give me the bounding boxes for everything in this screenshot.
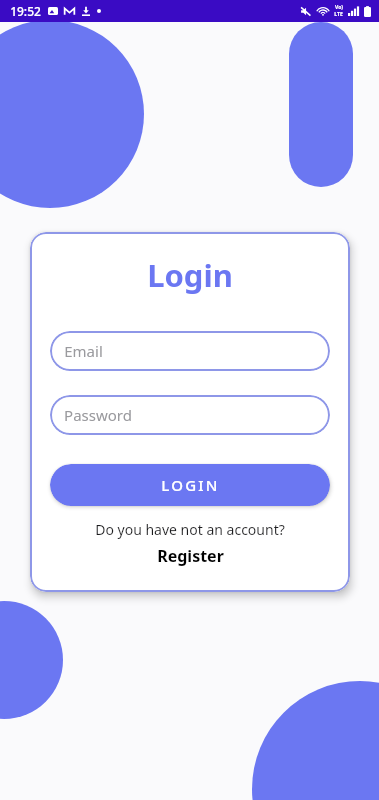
staticText: Vo) [335, 4, 343, 11]
button[interactable]: Password [50, 395, 330, 435]
button[interactable]: Register [157, 545, 224, 567]
staticText: Login [147, 254, 233, 296]
staticText: Email [64, 341, 103, 361]
button[interactable]: Email [50, 331, 330, 371]
staticText: Password [64, 405, 132, 425]
staticText: LTE [334, 11, 343, 18]
staticText: LOGIN [161, 475, 220, 495]
staticText: 19:52 [10, 3, 41, 19]
staticText: Register [157, 545, 224, 567]
button[interactable]: LOGIN [50, 464, 330, 506]
staticText: Do you have not an account? [95, 520, 285, 539]
